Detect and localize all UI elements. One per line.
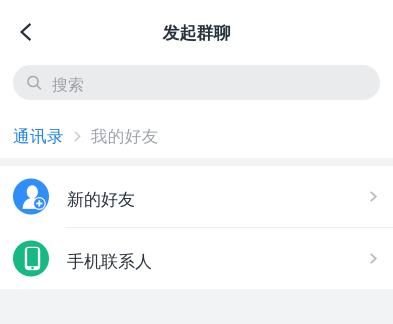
- button[interactable]: 手机联系人: [0, 228, 393, 289]
- button[interactable]: 通讯录: [13, 126, 64, 147]
- staticText: 发起群聊: [162, 22, 230, 44]
- button[interactable]: 新的好友: [0, 166, 393, 227]
- button[interactable]: Back: [4, 10, 48, 54]
- staticText: 我的好友: [91, 126, 159, 147]
- staticText: 搜索: [52, 75, 84, 95]
- staticText: 手机联系人: [67, 251, 152, 272]
- staticText: 通讯录: [13, 126, 64, 147]
- staticText: 新的好友: [67, 189, 135, 210]
- button[interactable]: 搜索: [13, 65, 380, 100]
